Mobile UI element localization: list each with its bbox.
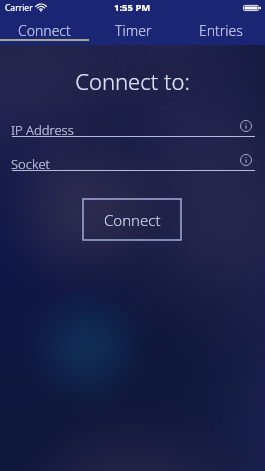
staticText: 1:55 PM — [114, 1, 151, 14]
staticText: Timer — [115, 21, 152, 40]
staticText: Connect — [18, 21, 71, 40]
button[interactable]: Connect — [83, 199, 181, 240]
staticText: Carrier — [5, 2, 33, 14]
button[interactable]: Info about IP Address — [240, 120, 252, 132]
staticText: Socket — [11, 155, 50, 173]
button[interactable]: Entries — [177, 20, 265, 45]
button[interactable]: Timer — [89, 20, 177, 45]
staticText: Connect — [104, 210, 161, 230]
staticText: IP Address — [11, 121, 74, 139]
button[interactable]: Connect — [0, 20, 89, 45]
button[interactable]: Info about Socket — [240, 154, 252, 166]
staticText: Entries — [199, 21, 243, 40]
staticText: Connect to: — [0, 66, 265, 96]
